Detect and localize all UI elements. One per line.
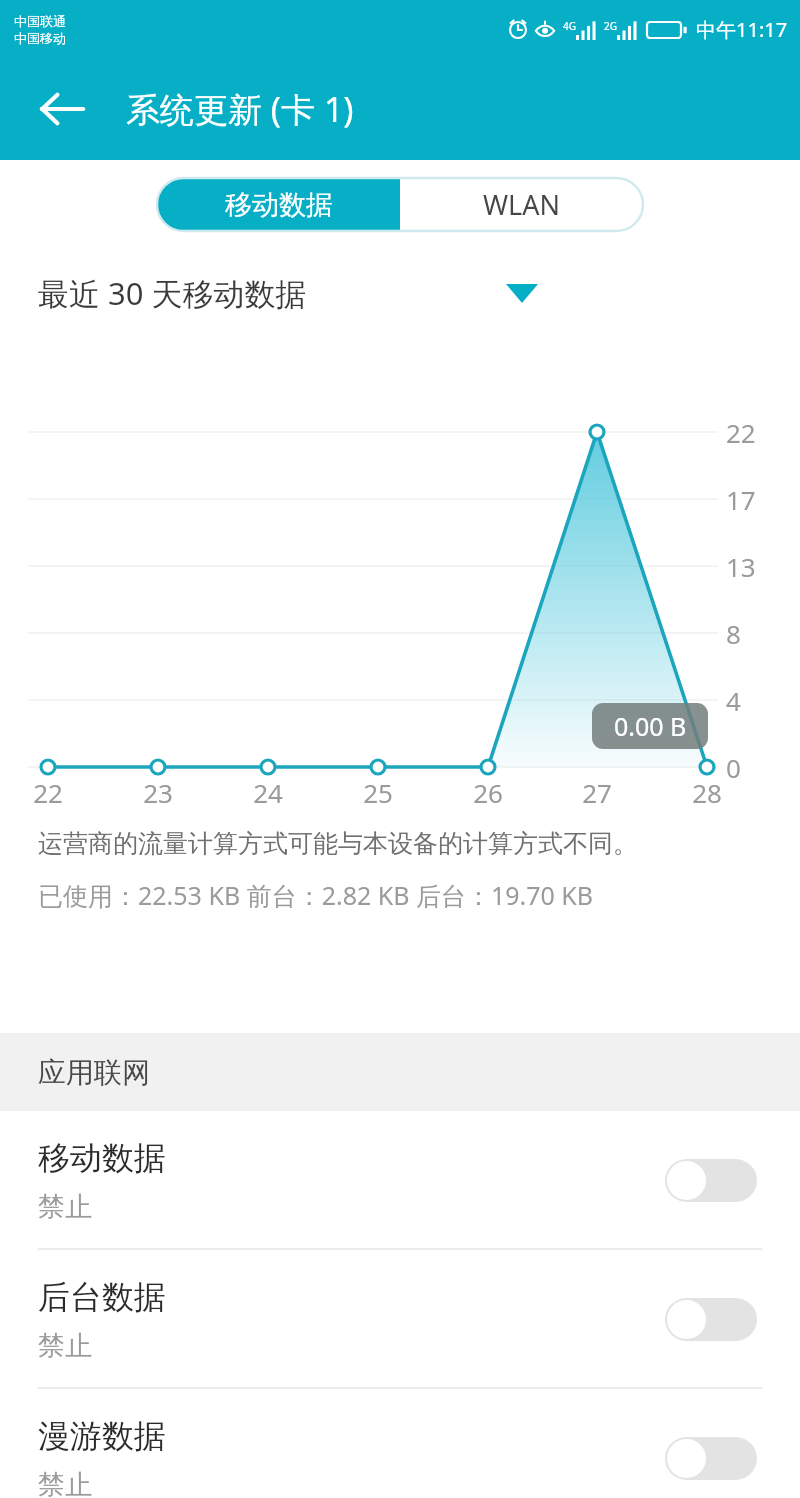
staticText: 已使用：22.53 KB 前台：2.82 KB 后台：19.70 KB	[38, 878, 594, 912]
button[interactable]: WLAN	[400, 178, 643, 231]
staticText: 中国联通	[14, 13, 66, 29]
staticText: 26	[473, 775, 503, 810]
staticText: 中午11:17	[696, 16, 788, 43]
button[interactable]: 漫游数据	[0, 1389, 800, 1498]
staticText: 系统更新 (卡 1)	[126, 86, 354, 132]
staticText: 28	[692, 775, 722, 810]
staticText: 0	[726, 750, 741, 785]
button[interactable]: 后台数据	[0, 1250, 800, 1389]
staticText: 0.00 B	[614, 709, 687, 743]
staticText: 23	[143, 775, 173, 810]
staticText: 4	[726, 683, 741, 718]
staticText: 22	[33, 775, 63, 810]
button[interactable]: 移动数据	[0, 1111, 800, 1250]
staticText: 8	[726, 616, 741, 651]
button[interactable]: 移动数据	[157, 178, 400, 231]
button[interactable]: 返回	[24, 71, 100, 147]
staticText: 移动数据	[225, 188, 333, 222]
staticText: 2G	[604, 19, 617, 33]
staticText: 22	[726, 415, 756, 450]
staticText: 漫游数据	[38, 1416, 166, 1456]
staticText: 应用联网	[38, 1055, 150, 1090]
staticText: 25	[363, 775, 393, 810]
staticText: 运营商的流量计算方式可能与本设备的计算方式不同。	[38, 828, 638, 859]
staticText: 4G	[563, 19, 576, 33]
staticText: 禁止	[38, 1190, 92, 1224]
staticText: 后台数据	[38, 1277, 166, 1317]
staticText: 禁止	[38, 1468, 92, 1498]
staticText: 中国移动	[14, 30, 66, 46]
staticText: 禁止	[38, 1329, 92, 1363]
staticText: 17	[726, 482, 756, 517]
staticText: 27	[582, 775, 612, 810]
staticText: 最近 30 天移动数据	[38, 272, 307, 314]
button[interactable]: 最近 30 天移动数据	[38, 260, 538, 326]
staticText: 13	[726, 549, 756, 584]
staticText: 24	[253, 775, 283, 810]
staticText: WLAN	[483, 186, 561, 223]
staticText: 移动数据	[38, 1138, 166, 1178]
